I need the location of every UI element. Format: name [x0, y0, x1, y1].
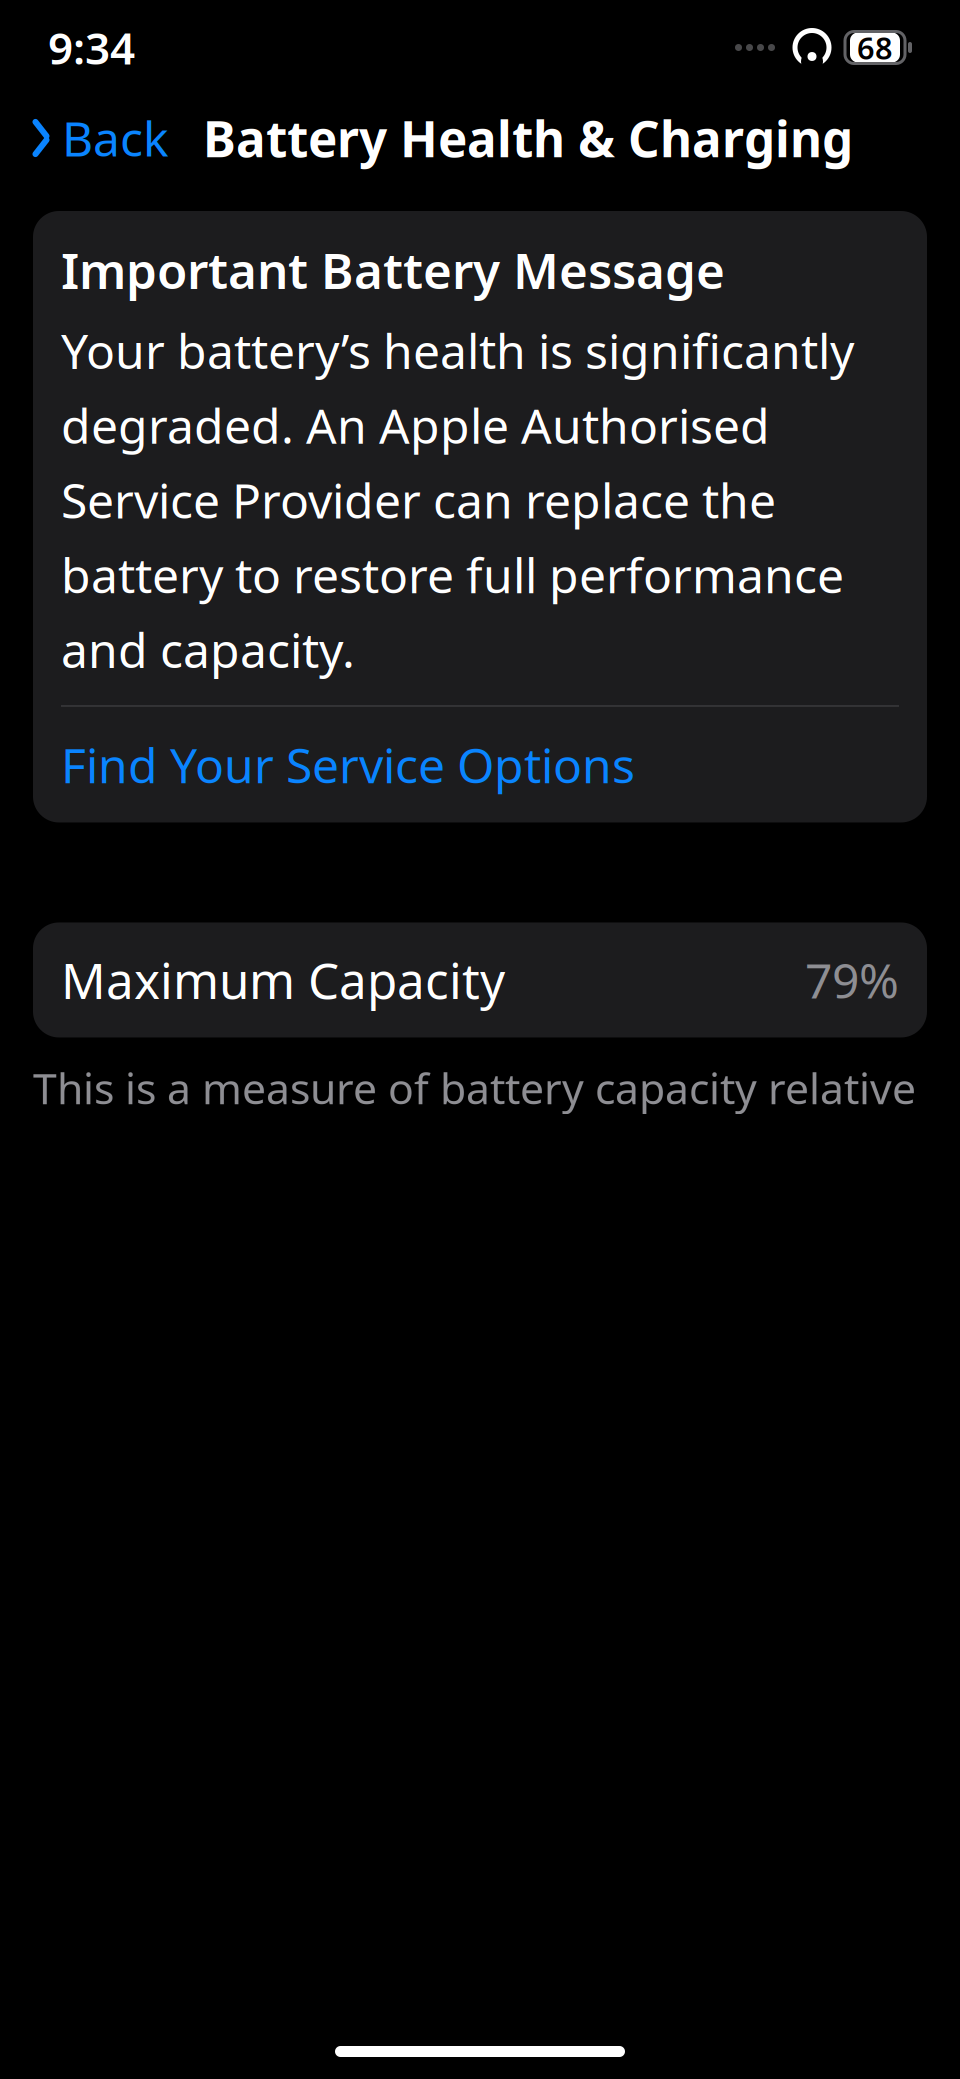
button[interactable]: Maximum Capacity [33, 922, 927, 1037]
button[interactable]: Find Your Service Options [61, 707, 899, 822]
staticText: Your battery’s health is significantly d… [61, 318, 854, 681]
staticText: Battery Health & Charging [203, 105, 853, 171]
staticText: Maximum Capacity [61, 947, 505, 1013]
staticText: Important Battery Message [61, 237, 725, 302]
staticText: 68 [857, 27, 893, 68]
staticText: 79% [805, 948, 899, 1012]
staticText: Back [62, 106, 169, 170]
staticText: To reduce battery ageing, iPhone learns … [33, 1821, 857, 2075]
staticText: 9:34 [48, 18, 135, 77]
staticText: This is a measure of battery capacity re… [33, 1059, 916, 1313]
button[interactable]: Back [18, 96, 181, 180]
staticText: Find Your Service Options [61, 733, 635, 796]
